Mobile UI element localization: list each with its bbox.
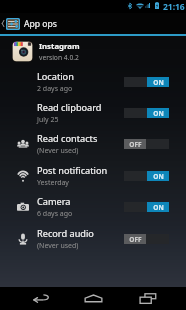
- staticText: Read clipboard: [37, 101, 102, 114]
- staticText: Yesterday: [37, 178, 69, 188]
- button[interactable]: Record audio: [0, 223, 186, 254]
- button[interactable]: ON: [124, 108, 169, 118]
- staticText: 2 days ago: [37, 84, 73, 94]
- staticText: App ops: [24, 18, 57, 30]
- button[interactable]: OFF: [124, 139, 169, 149]
- staticText: 6 days ago: [37, 209, 73, 219]
- button[interactable]: ON: [124, 171, 169, 181]
- staticText: ON: [153, 203, 164, 212]
- button[interactable]: ON: [124, 77, 169, 87]
- staticText: Record audio: [37, 227, 94, 240]
- button[interactable]: Location: [0, 66, 186, 97]
- staticText: (Never used): [37, 146, 79, 156]
- staticText: ON: [153, 78, 164, 87]
- staticText: Location: [37, 70, 74, 83]
- staticText: ON: [153, 172, 164, 181]
- button[interactable]: Read contacts: [0, 128, 186, 159]
- button[interactable]: Post notification: [0, 160, 186, 191]
- staticText: July 25: [37, 115, 59, 125]
- staticText: OFF: [129, 140, 142, 149]
- staticText: 21:16: [163, 1, 185, 13]
- button[interactable]: Read clipboard: [0, 97, 186, 128]
- staticText: Post notification: [37, 164, 108, 177]
- button[interactable]: Navigate up: [0, 13, 62, 34]
- button[interactable]: Instagram: [0, 36, 186, 66]
- button[interactable]: Camera: [0, 191, 186, 222]
- staticText: Read contacts: [37, 132, 98, 145]
- button[interactable]: Recents: [127, 287, 169, 310]
- staticText: Instagram: [39, 41, 80, 52]
- staticText: Camera: [37, 195, 71, 208]
- button[interactable]: Back: [19, 287, 61, 310]
- button[interactable]: OFF: [124, 234, 169, 244]
- staticText: ON: [153, 109, 164, 118]
- button[interactable]: ON: [124, 202, 169, 212]
- staticText: version 4.0.2: [39, 53, 79, 62]
- staticText: (Never used): [37, 241, 79, 251]
- staticText: OFF: [129, 235, 142, 244]
- button[interactable]: Home: [72, 287, 115, 310]
